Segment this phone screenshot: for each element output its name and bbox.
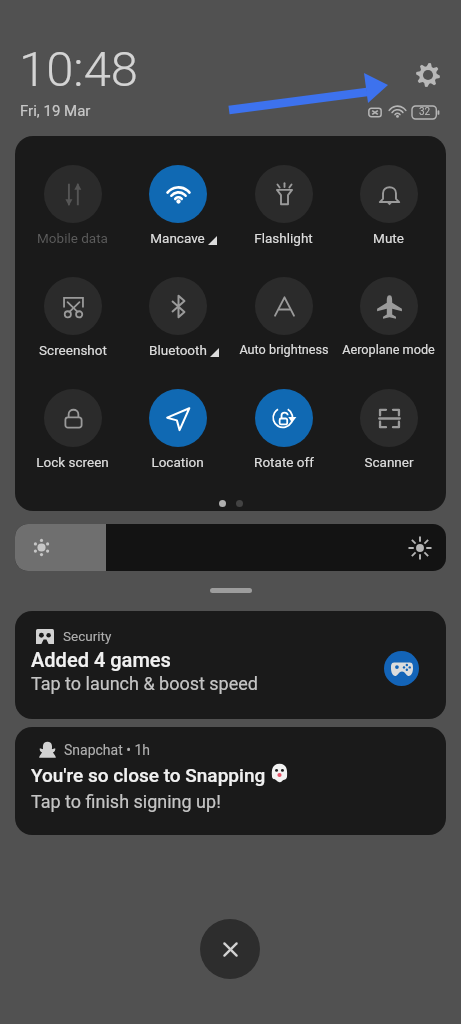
staticText: Screenshot	[39, 342, 107, 358]
staticText: Mute	[373, 230, 404, 246]
button[interactable]: Snapchat • 1h	[15, 727, 446, 835]
staticText: Added 4 games	[31, 648, 171, 671]
staticText: Rotate off	[254, 454, 314, 470]
button[interactable]: Aeroplane mode	[336, 277, 441, 357]
button[interactable]: Screenshot	[20, 277, 125, 358]
button[interactable]: Mobile data	[20, 165, 125, 246]
staticText: Bluetooth	[149, 342, 207, 358]
staticText: Mobile data	[37, 230, 108, 246]
button[interactable]: Mancave	[125, 165, 230, 246]
staticText: Tap to launch & boost speed	[31, 673, 258, 694]
staticText: Mancave	[150, 230, 205, 246]
staticText: Flashlight	[254, 230, 313, 246]
staticText: Location	[151, 454, 204, 470]
button[interactable]: Mute	[336, 165, 441, 246]
button[interactable]: Scanner	[336, 389, 441, 470]
staticText: Aeroplane mode	[342, 342, 435, 357]
button[interactable]: Auto brightness	[231, 277, 336, 357]
button[interactable]: Close	[200, 919, 260, 979]
button[interactable]: Location	[125, 389, 230, 470]
staticText: You're so close to Snapping	[31, 764, 266, 786]
button[interactable]: Bluetooth	[125, 277, 230, 358]
staticText: Snapchat • 1h	[64, 742, 151, 758]
button[interactable]: Brightness	[15, 524, 446, 571]
button[interactable]: Lock screen	[20, 389, 125, 470]
button[interactable]: Rotate off	[231, 389, 336, 470]
staticText: Security	[63, 628, 112, 644]
staticText: 10:48	[19, 41, 139, 98]
staticText: Tap to finish signing up!	[31, 791, 221, 812]
button[interactable]: Security	[15, 611, 446, 719]
staticText: Auto brightness	[239, 342, 329, 357]
staticText: Fri, 19 Mar	[20, 102, 91, 120]
staticText: Scanner	[364, 454, 414, 470]
button[interactable]: Flashlight	[231, 165, 336, 246]
button[interactable]: Settings	[411, 58, 445, 92]
staticText: Lock screen	[36, 454, 109, 470]
staticText: 32	[419, 106, 431, 118]
